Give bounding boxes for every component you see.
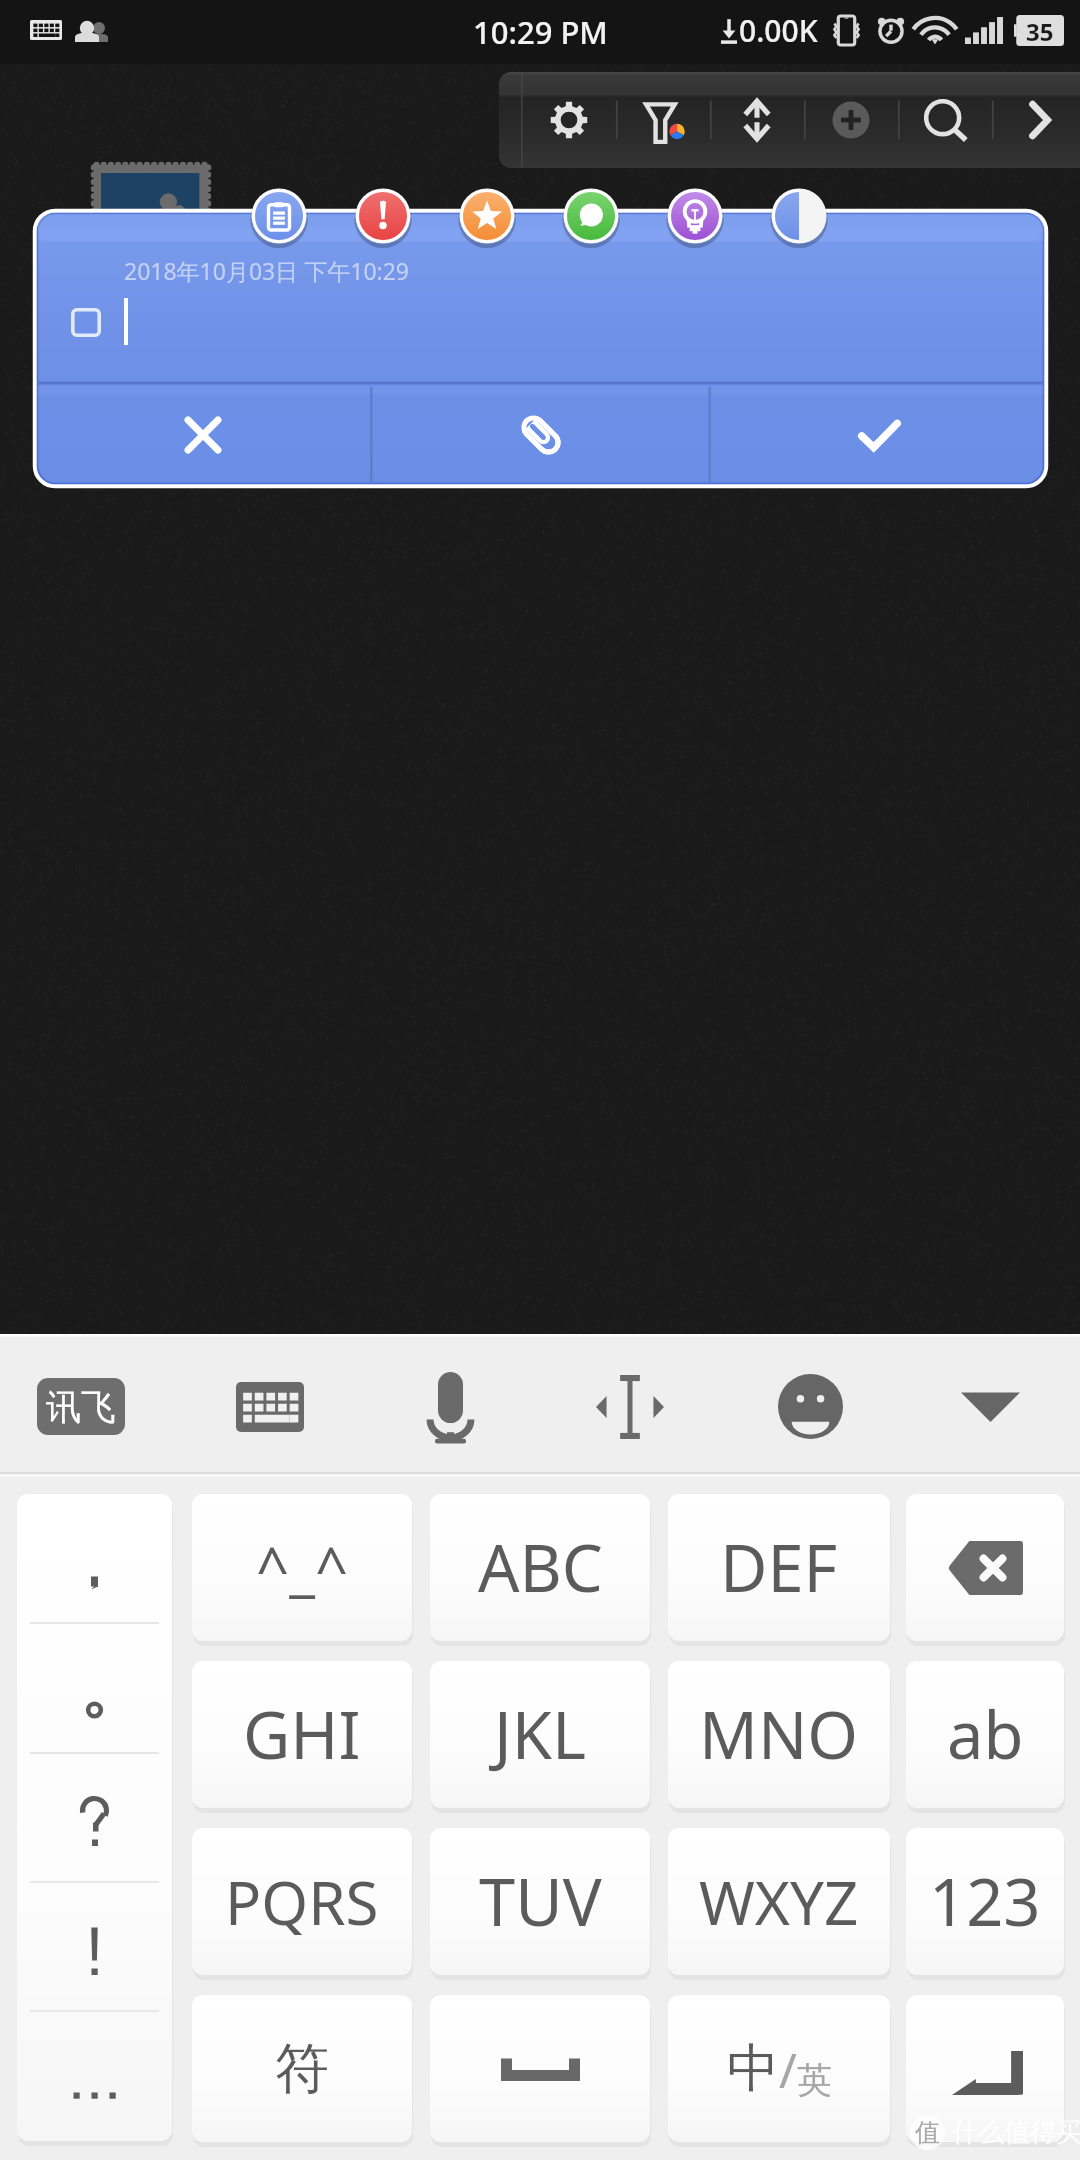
- button[interactable]: 中: [668, 1995, 890, 2142]
- staticText: GHI: [243, 1690, 361, 1779]
- staticText: 符: [275, 2035, 329, 2103]
- staticText: 值: [915, 2117, 940, 2148]
- button[interactable]: Cancel: [33, 386, 372, 484]
- staticText: TUV: [479, 1857, 602, 1946]
- staticText: ABC: [478, 1523, 603, 1612]
- button[interactable]: Period: [17, 1624, 172, 1754]
- button[interactable]: Hide keyboard: [900, 1337, 1080, 1476]
- button[interactable]: Emoji: [720, 1337, 900, 1476]
- button[interactable]: Filter: [616, 72, 710, 168]
- button[interactable]: ^_^: [192, 1494, 412, 1641]
- button[interactable]: ABC: [430, 1494, 650, 1641]
- button[interactable]: Priority: [348, 181, 418, 251]
- button[interactable]: More symbols: [17, 2012, 172, 2141]
- button[interactable]: PQRS: [192, 1828, 412, 1975]
- button[interactable]: Search: [898, 72, 992, 168]
- button[interactable]: [906, 1494, 1064, 1641]
- button[interactable]: Question mark: [17, 1754, 172, 1883]
- button[interactable]: [430, 1995, 650, 2142]
- staticText: /: [779, 2037, 797, 2102]
- button[interactable]: Move cursor: [540, 1337, 720, 1476]
- button[interactable]: GHI: [192, 1661, 412, 1808]
- button[interactable]: MNO: [668, 1661, 890, 1808]
- button[interactable]: Add: [804, 72, 898, 168]
- staticText: DEF: [720, 1523, 838, 1612]
- staticText: JKL: [494, 1690, 587, 1779]
- button[interactable]: TUV: [430, 1828, 650, 1975]
- staticText: ^_^: [256, 1528, 349, 1607]
- button[interactable]: Idea: [660, 181, 730, 251]
- button[interactable]: Settings: [522, 72, 616, 168]
- staticText: 讯飞: [46, 1385, 116, 1429]
- button[interactable]: Comma: [17, 1494, 172, 1624]
- button[interactable]: JKL: [430, 1661, 650, 1808]
- button[interactable]: 符: [192, 1995, 412, 2142]
- staticText: 123: [929, 1857, 1041, 1946]
- button[interactable]: Theme: [764, 181, 834, 251]
- button[interactable]: Voice input: [360, 1337, 540, 1476]
- button[interactable]: iFlytek: [0, 1337, 180, 1476]
- button[interactable]: Note: [244, 181, 314, 251]
- staticText: ab: [947, 1690, 1024, 1779]
- button[interactable]: [906, 1995, 1064, 2142]
- staticText: 中: [727, 2036, 779, 2102]
- staticText: 2018年10月03日 下午10:29: [124, 255, 410, 286]
- button[interactable]: Comment: [556, 181, 626, 251]
- button[interactable]: Attach: [372, 386, 710, 484]
- button[interactable]: Star: [452, 181, 522, 251]
- button[interactable]: 123: [906, 1828, 1064, 1975]
- staticText: 什么值得买: [952, 2116, 1080, 2149]
- staticText: 英: [797, 2058, 832, 2102]
- staticText: 10:29 PM: [473, 11, 608, 53]
- button[interactable]: ab: [906, 1661, 1064, 1808]
- button[interactable]: Exclamation mark: [17, 1883, 172, 2012]
- staticText: 0.00K: [739, 10, 818, 51]
- button[interactable]: WXYZ: [668, 1828, 890, 1975]
- button[interactable]: Done: [710, 386, 1048, 484]
- staticText: 35: [1026, 15, 1054, 46]
- staticText: MNO: [699, 1690, 859, 1779]
- button[interactable]: More: [992, 72, 1080, 168]
- button[interactable]: Sort: [710, 72, 804, 168]
- button[interactable]: DEF: [668, 1494, 890, 1641]
- button[interactable]: Keyboard layout: [180, 1337, 360, 1476]
- staticText: WXYZ: [699, 1861, 859, 1943]
- staticText: PQRS: [225, 1861, 379, 1943]
